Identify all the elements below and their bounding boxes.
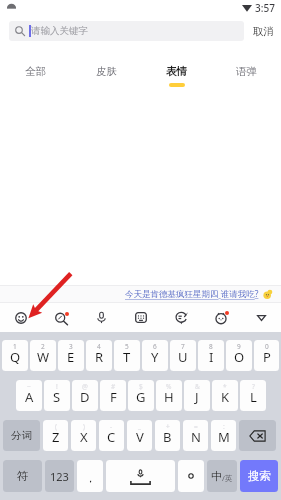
button[interactable]: Q — [2, 340, 28, 371]
button[interactable]: 今天是肯德基疯狂星期四 谁请我吃? — [125, 288, 281, 300]
staticText: 语弹 — [236, 65, 257, 78]
button[interactable]: Settings — [201, 303, 241, 332]
button[interactable]: N — [183, 420, 208, 451]
staticText: ? — [252, 382, 255, 391]
button[interactable]: A — [16, 380, 42, 411]
staticText: ! — [56, 382, 58, 391]
staticText: 分词 — [11, 429, 32, 442]
button[interactable]: 皮肤 — [71, 44, 141, 88]
staticText: 4 — [97, 342, 101, 351]
button[interactable]: C — [99, 420, 124, 451]
button[interactable]: D — [72, 380, 98, 411]
button[interactable]: K — [212, 380, 238, 411]
staticText: 1 — [13, 342, 17, 351]
staticText: T — [123, 348, 131, 366]
button[interactable]: Space — [106, 460, 175, 492]
staticText: G — [136, 388, 146, 406]
button[interactable]: R — [86, 340, 112, 371]
button[interactable]: T — [114, 340, 140, 371]
staticText: B — [163, 428, 172, 446]
button[interactable]: B — [155, 420, 180, 451]
staticText: Q — [10, 348, 21, 366]
staticText: 取消 — [253, 25, 274, 38]
button[interactable]: G — [128, 380, 154, 411]
button[interactable]: S — [44, 380, 70, 411]
button[interactable]: X — [71, 420, 96, 451]
staticText: /英 — [222, 473, 233, 483]
button[interactable] — [178, 460, 204, 492]
button[interactable]: 语弹 — [211, 44, 281, 88]
button[interactable]: Stickers — [121, 303, 161, 332]
button[interactable]: ， — [77, 460, 103, 492]
staticText: ~ — [27, 382, 31, 391]
staticText: 7 — [181, 342, 185, 351]
staticText: $ — [139, 382, 143, 391]
button[interactable]: U — [170, 340, 196, 371]
button[interactable]: Y — [142, 340, 168, 371]
staticText: % — [166, 382, 172, 391]
staticText: S — [53, 388, 61, 406]
button[interactable]: P — [254, 340, 279, 371]
staticText: 0 — [265, 342, 269, 351]
staticText: 请输入关键字 — [31, 25, 88, 37]
button[interactable]: O — [226, 340, 252, 371]
staticText: V — [136, 428, 144, 446]
button[interactable]: F — [100, 380, 126, 411]
button[interactable]: 请输入关键字 — [9, 21, 244, 41]
staticText: A — [25, 388, 34, 406]
staticText: 123 — [50, 469, 69, 484]
button[interactable]: 表情 — [141, 44, 211, 88]
staticText: 8 — [209, 342, 213, 351]
staticText: C — [107, 428, 116, 446]
button[interactable]: Backspace — [239, 420, 276, 451]
button[interactable]: 搜索 — [240, 460, 278, 492]
button[interactable]: Emoji — [0, 303, 41, 332]
button[interactable]: Search — [41, 303, 81, 332]
staticText: M — [218, 428, 230, 446]
staticText: 2 — [41, 342, 45, 351]
button[interactable]: J — [184, 380, 210, 411]
button[interactable]: Z — [43, 420, 68, 451]
staticText: 9 — [237, 342, 241, 351]
staticText: U — [178, 348, 188, 366]
staticText: F — [110, 388, 117, 406]
staticText: L — [250, 388, 257, 406]
button[interactable]: Hide keyboard — [241, 303, 281, 332]
button[interactable]: W — [30, 340, 56, 371]
staticText: @ — [82, 382, 88, 391]
staticText: 3:57 — [255, 1, 275, 15]
staticText: 搜索 — [248, 469, 271, 483]
button[interactable]: V — [127, 420, 152, 451]
staticText: 符 — [17, 469, 29, 483]
button[interactable]: E — [58, 340, 84, 371]
button[interactable]: 符 — [3, 460, 42, 492]
staticText: _ — [138, 422, 141, 431]
staticText: = — [194, 422, 198, 431]
button[interactable]: Edit — [161, 303, 201, 332]
staticText: N — [191, 428, 201, 446]
button[interactable]: I — [198, 340, 224, 371]
button[interactable]: H — [156, 380, 182, 411]
button[interactable]: 取消 — [249, 20, 278, 43]
button[interactable]: 中 — [207, 460, 237, 492]
staticText: ( — [55, 422, 57, 431]
button[interactable]: 123 — [45, 460, 74, 492]
button[interactable]: 分词 — [3, 420, 40, 451]
button[interactable]: M — [211, 420, 236, 451]
staticText: Z — [52, 428, 60, 446]
button[interactable]: L — [240, 380, 266, 411]
button[interactable]: Voice — [81, 303, 121, 332]
staticText: W — [37, 348, 50, 366]
staticText: X — [80, 428, 88, 446]
staticText: 全部 — [25, 65, 46, 78]
staticText: P — [263, 348, 271, 366]
staticText: 表情 — [166, 65, 187, 78]
staticText: 6 — [153, 342, 157, 351]
staticText: ) — [83, 422, 85, 431]
staticText: D — [80, 388, 90, 406]
staticText: J — [195, 388, 199, 406]
staticText: - — [110, 422, 113, 431]
button[interactable]: 全部 — [0, 44, 71, 88]
staticText: K — [221, 388, 230, 406]
staticText: + — [166, 422, 170, 431]
